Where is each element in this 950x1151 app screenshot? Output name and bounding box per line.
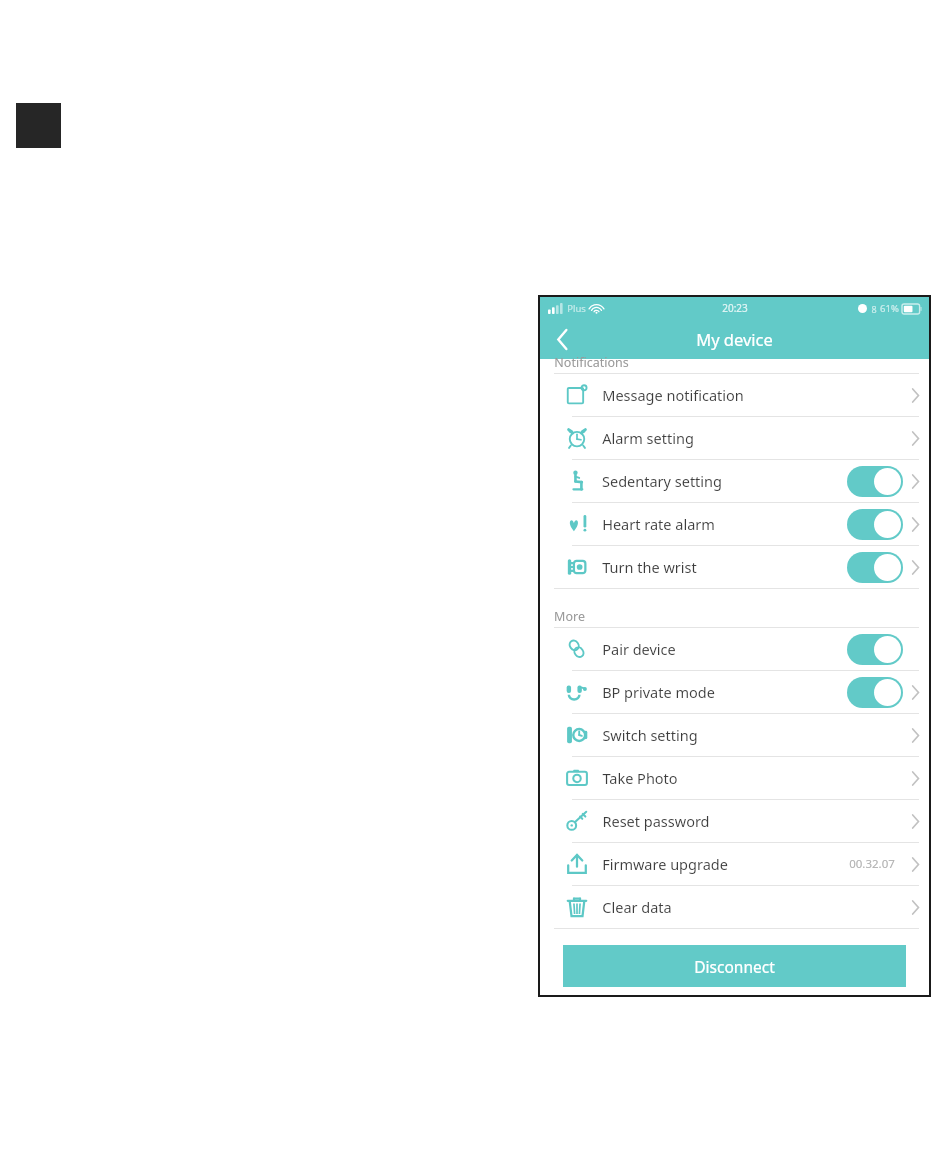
button[interactable]: Turn the wrist toggle [846,551,904,583]
staticText: Firmware upgrade [602,854,728,874]
button[interactable]: Sedentary setting toggle [846,465,904,497]
staticText: My device [696,328,773,350]
staticText: Message notification [602,385,744,405]
staticText: Alarm setting [602,428,694,448]
staticText: Plus [567,302,586,315]
button[interactable]: BP private mode toggle [846,676,904,708]
staticText: Take Photo [602,768,678,788]
button[interactable]: Reset password [540,800,929,842]
staticText: Disconnect [694,956,775,977]
button[interactable]: Firmware upgrade [540,843,929,885]
staticText: BP private mode [602,682,715,702]
staticText: Reset password [602,811,710,831]
staticText: 20:23 [722,301,748,315]
button[interactable]: Take Photo [540,757,929,799]
button[interactable]: Heart rate alarm [540,503,929,545]
button[interactable]: Pair device [540,628,929,670]
staticText: 00.32.07 [849,856,895,872]
staticText: 8 [871,303,877,315]
button[interactable]: Back [540,319,584,359]
button[interactable]: Turn the wrist [540,546,929,588]
staticText: Heart rate alarm [602,514,715,534]
button[interactable]: Alarm setting [540,417,929,459]
button[interactable]: Heart rate alarm toggle [846,508,904,540]
staticText: Pair device [602,639,676,659]
button[interactable]: Message notification [540,374,929,416]
staticText: Clear data [602,897,672,917]
button[interactable]: Pair device toggle [846,633,904,665]
staticText: 61% [880,302,899,315]
staticText: Switch setting [602,725,698,745]
staticText: Sedentary setting [602,471,722,491]
staticText: Notifications [554,354,629,368]
staticText: More [554,608,585,625]
button[interactable]: Sedentary setting [540,460,929,502]
staticText: Turn the wrist [602,557,697,577]
button[interactable]: Clear data [540,886,929,928]
button[interactable]: BP private mode [540,671,929,713]
button[interactable]: Switch setting [540,714,929,756]
button[interactable]: Disconnect [563,945,906,987]
